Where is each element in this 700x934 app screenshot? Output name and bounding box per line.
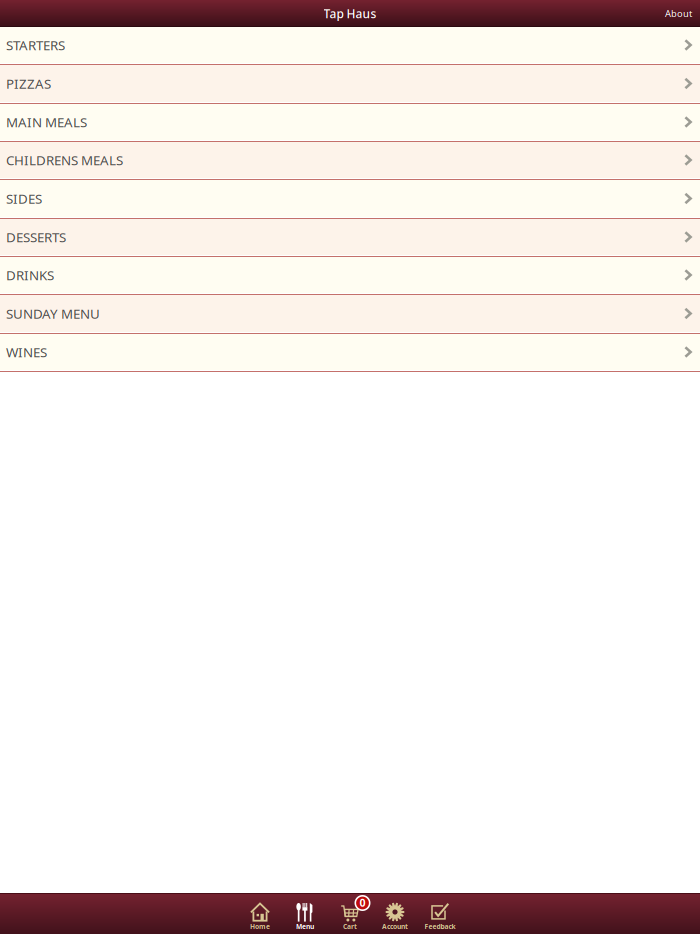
staticText: Feedback xyxy=(424,922,455,931)
button[interactable]: Home xyxy=(237,893,282,934)
button[interactable]: Feedback xyxy=(417,893,462,934)
button[interactable]: WINES xyxy=(0,334,700,372)
button[interactable]: SUNDAY MENU xyxy=(0,295,700,334)
staticText: SUNDAY MENU xyxy=(6,305,100,322)
button[interactable]: About xyxy=(657,0,700,27)
staticText: Account xyxy=(382,922,408,931)
staticText: SIDES xyxy=(6,190,42,207)
staticText: MAIN MEALS xyxy=(6,113,87,131)
button[interactable]: DRINKS xyxy=(0,257,700,295)
staticText: CHILDRENS MEALS xyxy=(6,151,123,169)
staticText: WINES xyxy=(6,343,47,361)
staticText: About xyxy=(665,7,692,20)
button[interactable]: PIZZAS xyxy=(0,65,700,104)
button[interactable]: MAIN MEALS xyxy=(0,104,700,142)
staticText: PIZZAS xyxy=(6,75,51,92)
staticText: Menu xyxy=(296,922,314,931)
button[interactable]: DESSERTS xyxy=(0,219,700,257)
button[interactable]: CHILDRENS MEALS xyxy=(0,142,700,180)
button[interactable]: Account xyxy=(372,893,417,934)
staticText: DRINKS xyxy=(6,266,54,284)
button[interactable]: STARTERS xyxy=(0,27,700,65)
staticText: 0 xyxy=(359,896,365,910)
button[interactable]: SIDES xyxy=(0,180,700,219)
staticText: Home xyxy=(250,922,270,931)
staticText: STARTERS xyxy=(6,36,65,54)
button[interactable]: Cart xyxy=(327,893,372,934)
staticText: Tap Haus xyxy=(323,5,376,21)
button[interactable]: Menu xyxy=(282,893,327,934)
staticText: Cart xyxy=(343,922,357,931)
staticText: DESSERTS xyxy=(6,228,66,246)
